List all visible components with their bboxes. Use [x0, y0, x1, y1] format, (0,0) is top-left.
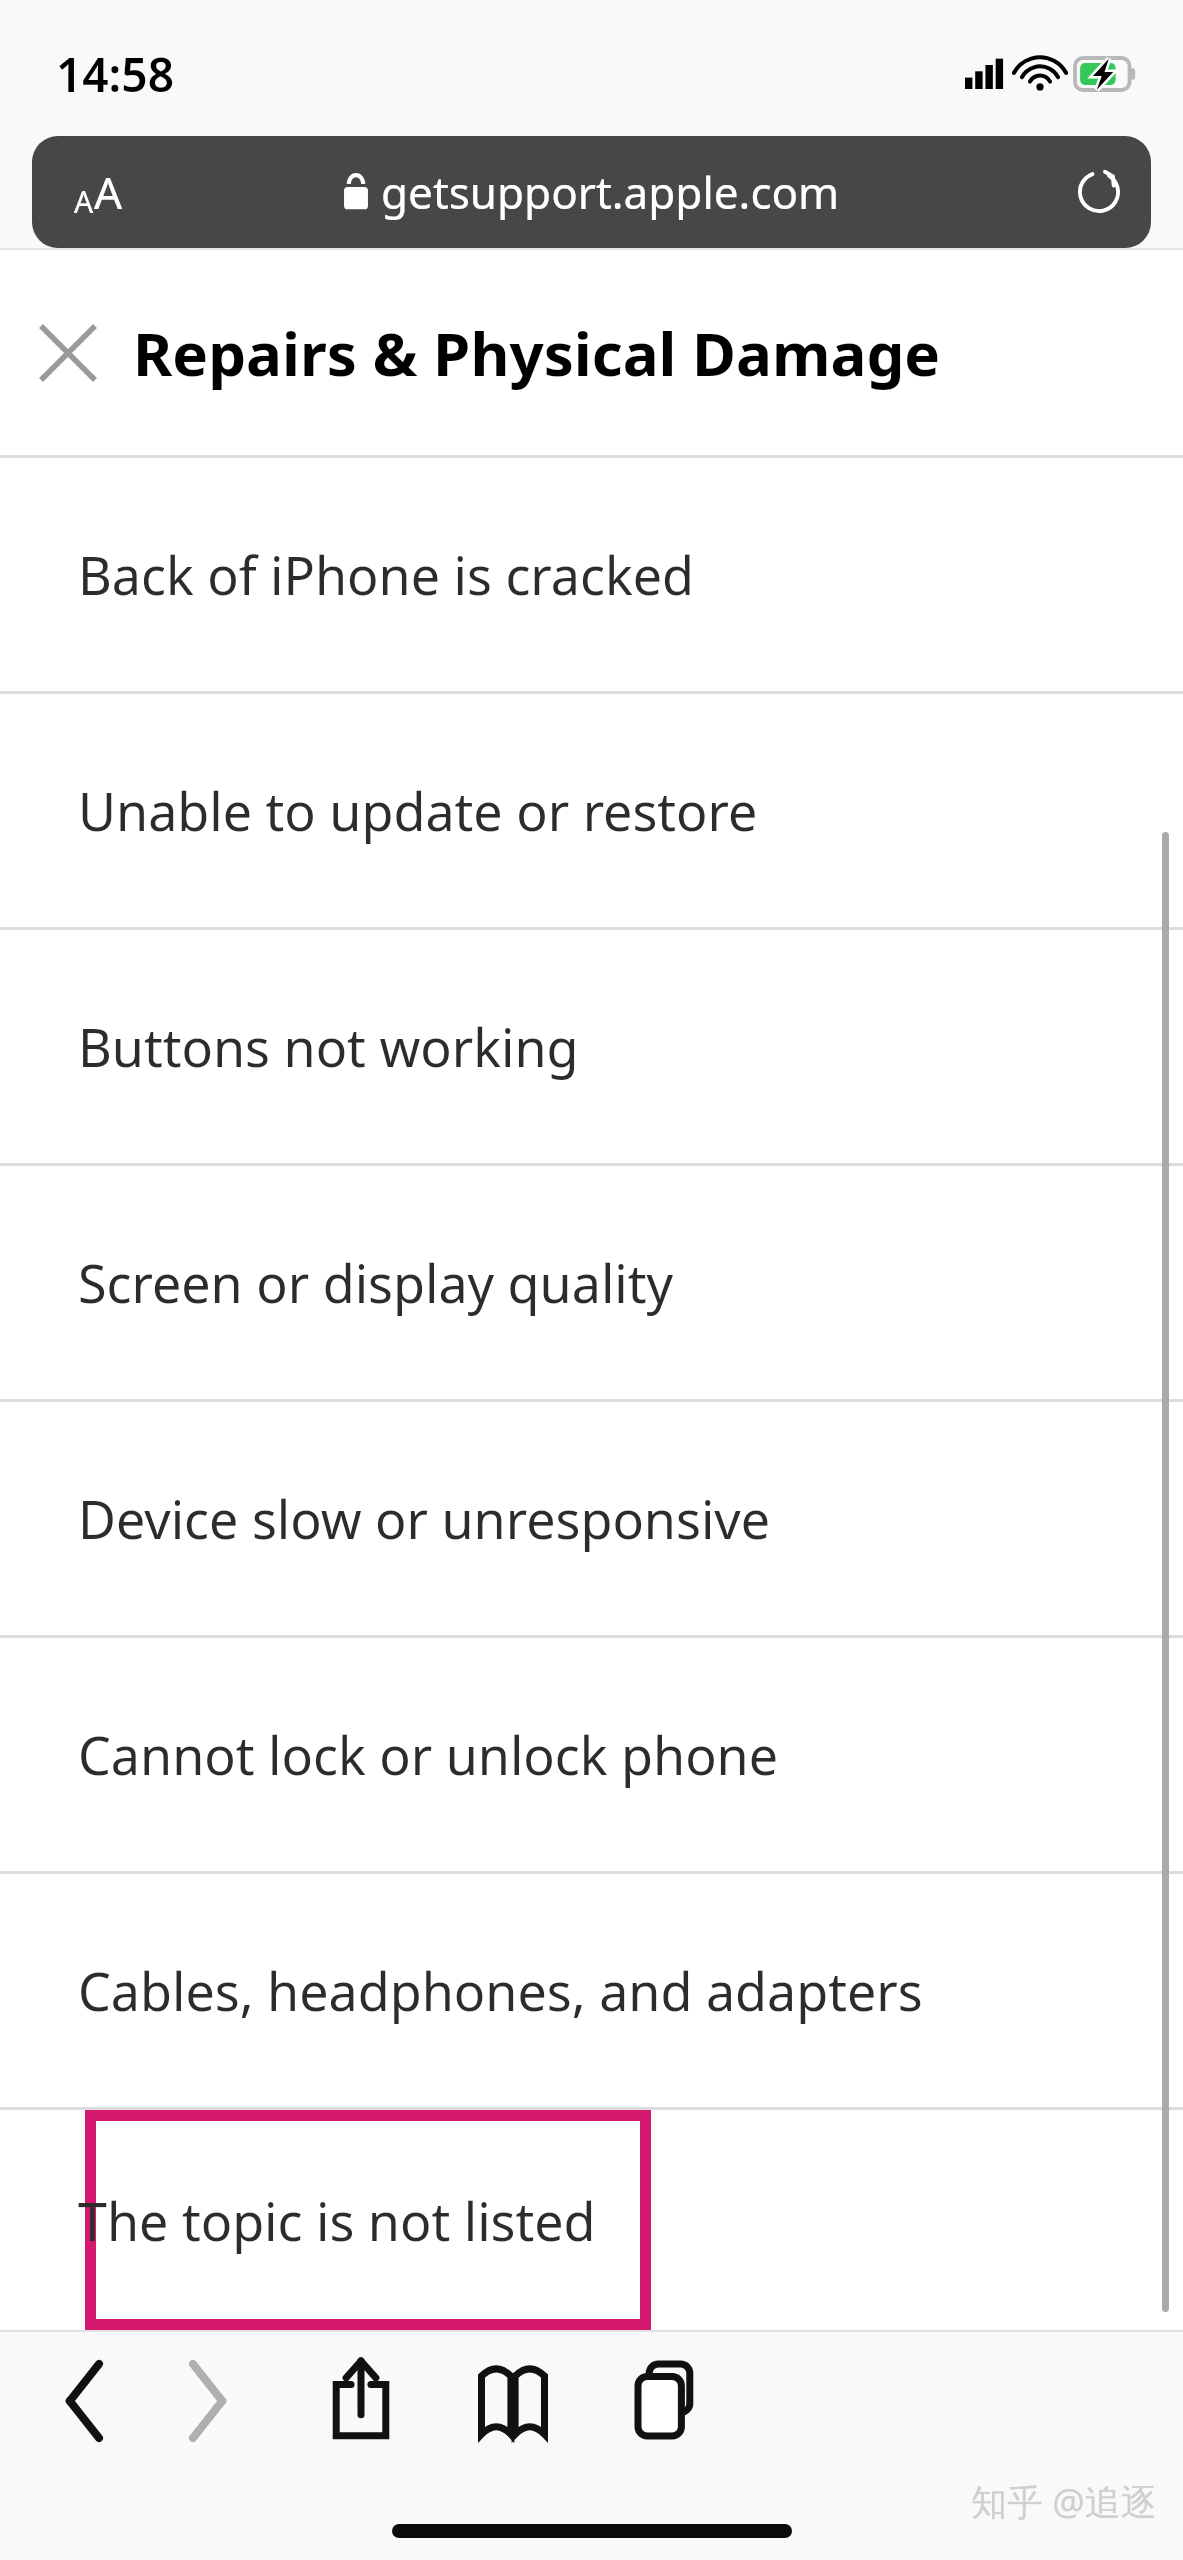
staticText: 14:58	[56, 43, 174, 106]
staticText: A	[94, 162, 123, 222]
button[interactable]: Back	[30, 2346, 140, 2456]
staticText: Unable to update or restore	[78, 775, 758, 846]
button[interactable]: Tabs	[610, 2344, 722, 2456]
button[interactable]: Cannot lock or unlock phone	[0, 1638, 1183, 1871]
staticText: 知乎 @追逐	[971, 2477, 1157, 2526]
staticText: Repairs & Physical Damage	[133, 312, 941, 394]
button[interactable]: Text size options	[32, 136, 1151, 248]
button[interactable]: Buttons not working	[0, 930, 1183, 1163]
button[interactable]: The topic is not listed	[0, 2110, 1183, 2330]
button[interactable]: Screen or display quality	[0, 1166, 1183, 1399]
staticText: A	[74, 181, 94, 222]
staticText: Back of iPhone is cracked	[78, 539, 694, 610]
button[interactable]: Cables, headphones, and adapters	[0, 1874, 1183, 2107]
button[interactable]: Bookmarks	[457, 2346, 569, 2458]
button[interactable]: Reload	[1063, 156, 1135, 228]
staticText: Buttons not working	[78, 1011, 579, 1082]
staticText: getsupport.apple.com	[381, 162, 840, 222]
staticText: Cables, headphones, and adapters	[78, 1955, 923, 2026]
button[interactable]: Unable to update or restore	[0, 694, 1183, 927]
button[interactable]: Close	[22, 307, 114, 399]
staticText: Device slow or unresponsive	[78, 1483, 771, 1554]
button[interactable]: Back of iPhone is cracked	[0, 458, 1183, 691]
button[interactable]: Device slow or unresponsive	[0, 1402, 1183, 1635]
staticText: Screen or display quality	[78, 1247, 674, 1318]
staticText: Cannot lock or unlock phone	[78, 1719, 779, 1790]
button[interactable]: Text size options	[52, 156, 144, 228]
button[interactable]: Forward	[152, 2346, 262, 2456]
button[interactable]: Share	[305, 2342, 417, 2454]
staticText: The topic is not listed	[78, 2185, 596, 2256]
